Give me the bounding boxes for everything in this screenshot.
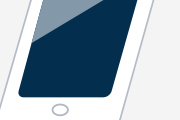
button[interactable]: Home: [0, 0, 180, 120]
